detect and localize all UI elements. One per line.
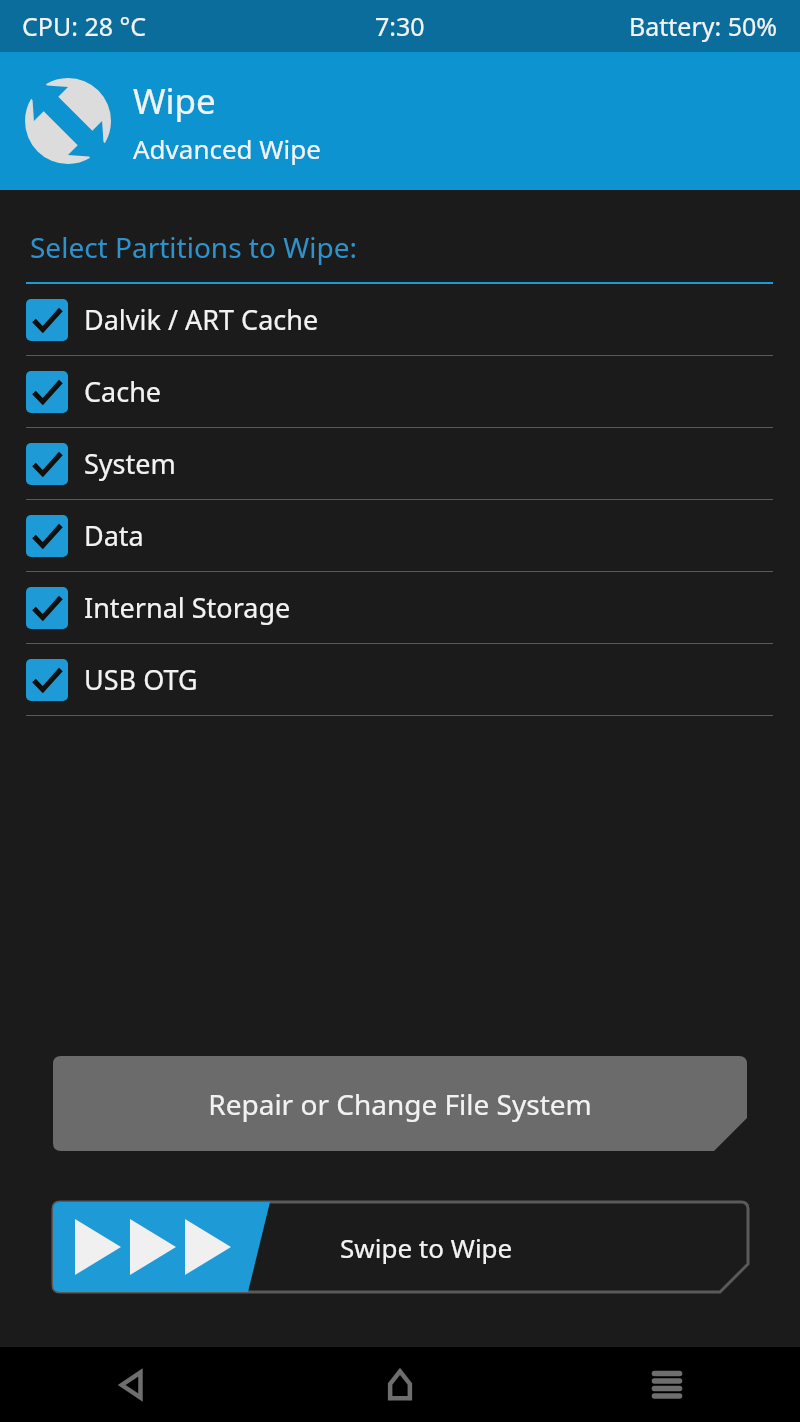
button[interactable]: Back — [0, 1347, 266, 1422]
staticText: Battery: 50% — [629, 9, 778, 43]
staticText: Swipe to Wipe — [340, 1230, 513, 1265]
button[interactable]: Menu — [533, 1347, 800, 1422]
button[interactable]: Repair or Change File System — [53, 1056, 747, 1151]
button[interactable]: Dalvik / ART Cache — [0, 284, 800, 356]
staticText: Cache — [84, 373, 162, 410]
staticText: USB OTG — [84, 661, 198, 698]
staticText: Repair or Change File System — [208, 1085, 592, 1123]
button[interactable]: Internal Storage — [0, 572, 800, 644]
staticText: CPU: 28 °C — [22, 9, 147, 43]
staticText: Internal Storage — [84, 589, 291, 626]
button[interactable]: USB OTG — [0, 644, 800, 716]
button[interactable]: System — [0, 428, 800, 500]
button[interactable]: Home — [266, 1347, 533, 1422]
button[interactable]: Data — [0, 500, 800, 572]
staticText: Wipe — [133, 77, 216, 125]
button[interactable]: Wipe — [0, 52, 800, 190]
staticText: Advanced Wipe — [133, 131, 321, 166]
staticText: Data — [84, 517, 144, 554]
staticText: Dalvik / ART Cache — [84, 301, 319, 338]
button[interactable]: Swipe to Wipe — [53, 1202, 748, 1292]
staticText: 7:30 — [375, 9, 425, 43]
staticText: System — [84, 445, 176, 482]
staticText: Select Partitions to Wipe: — [30, 228, 357, 266]
button[interactable]: Cache — [0, 356, 800, 428]
